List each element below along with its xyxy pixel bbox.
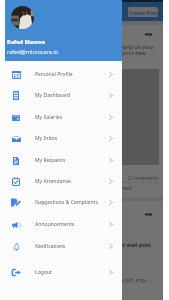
staticText: Personal Profile	[35, 71, 109, 78]
button[interactable]: My Inbox	[0, 128, 122, 149]
button[interactable]: Notifications	[0, 236, 122, 257]
button[interactable]: Create Post	[128, 7, 158, 17]
staticText: My Dashboard	[35, 92, 109, 99]
button[interactable]: Announcements	[0, 214, 122, 235]
button[interactable]: My Dashboard	[0, 85, 122, 106]
button[interactable]: My Salaries	[0, 107, 122, 128]
staticText: My Requests	[35, 157, 109, 164]
staticText: Create Post	[129, 9, 158, 16]
staticText: Comment	[108, 184, 133, 191]
staticText: 2 comments	[128, 174, 159, 181]
button[interactable]: Comment	[82, 184, 159, 191]
staticText: Notifications	[35, 243, 109, 250]
staticText: Suggestions & Complaints	[35, 199, 109, 206]
staticText: rafed@microcare.io	[7, 48, 59, 56]
button[interactable]: My Attendance	[0, 171, 122, 192]
staticText: Logout	[35, 269, 109, 276]
button[interactable]: My Requests	[0, 150, 122, 171]
button[interactable]: Logout	[0, 262, 122, 283]
staticText: My Attendance	[35, 178, 109, 185]
staticText: Rafed Masree	[7, 38, 46, 46]
button[interactable]: More options	[145, 33, 152, 36]
staticText: Announcements	[35, 221, 109, 228]
staticText: My Inbox	[35, 135, 109, 142]
staticText: Hi all, please welcome our new colleague…	[5, 43, 159, 64]
button[interactable]: Suggestions & Complaints	[0, 192, 122, 213]
staticText: Supported file types are: doc,docx,xls,x…	[5, 277, 152, 284]
staticText: Hello everyone and welcome. This is our …	[5, 241, 151, 248]
button[interactable]: More options	[145, 213, 152, 216]
staticText: My Salaries	[35, 114, 109, 121]
button[interactable]: Personal Profile	[0, 64, 122, 85]
button[interactable]: Like	[5, 184, 82, 191]
